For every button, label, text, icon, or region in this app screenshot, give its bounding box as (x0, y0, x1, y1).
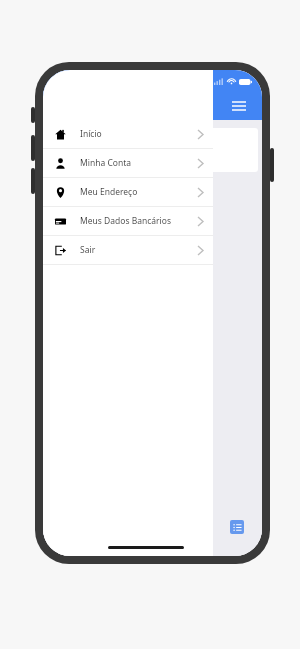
staticText: Meus Dados Bancários (80, 215, 171, 227)
button[interactable]: Meu Endereço (43, 178, 213, 206)
button[interactable]: Menu (216, 92, 262, 120)
staticText: Meu Endereço (80, 186, 138, 198)
staticText: Início (80, 128, 102, 140)
button[interactable]: Meus Dados Bancários (43, 207, 213, 235)
staticText: Pedido #73 (63, 133, 111, 145)
staticText: Minha Conta (80, 157, 131, 169)
button[interactable]: Minha Conta (43, 149, 213, 177)
button[interactable]: Sair (43, 236, 213, 264)
button[interactable]: Lista (230, 520, 244, 534)
staticText: Sair (80, 244, 96, 256)
staticText: Status: Dev (63, 161, 102, 171)
button[interactable]: Pedido #73 (55, 128, 258, 172)
button[interactable]: Início (43, 120, 213, 148)
